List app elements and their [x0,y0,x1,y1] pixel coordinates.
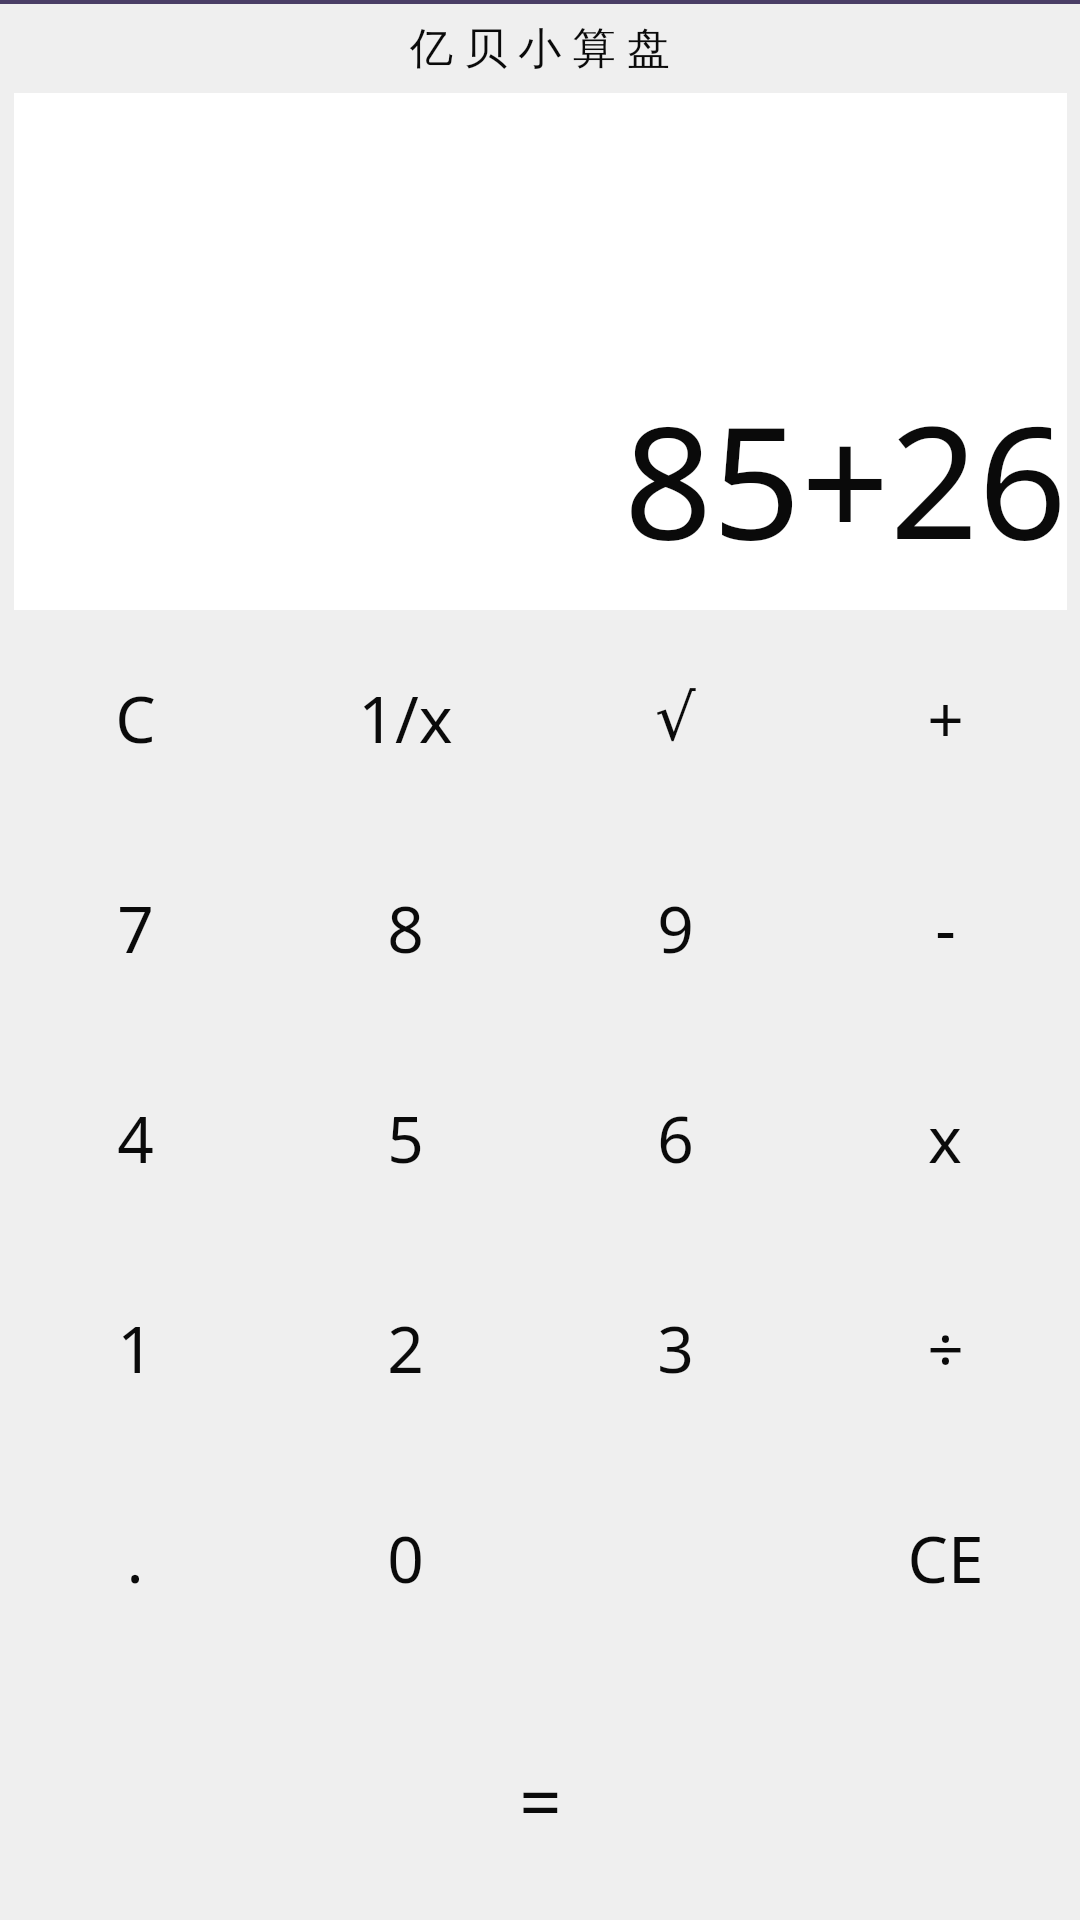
staticText: 0 [387,1515,424,1602]
staticText: 亿 贝 小 算 盘 [410,17,670,76]
staticText: C [115,675,156,762]
staticText: 85+26 [623,373,1067,584]
button[interactable]: 9 [540,823,810,1033]
staticText: x [928,1095,962,1182]
staticText: ÷ [927,1305,964,1392]
button[interactable]: CE [810,1453,1080,1663]
button[interactable]: 7 [0,823,270,1033]
staticText: . [126,1515,144,1602]
button[interactable]: 1 [0,1243,270,1453]
staticText: - [935,885,956,972]
button[interactable]: x [810,1033,1080,1243]
button[interactable]: 8 [270,823,540,1033]
staticText: 1 [117,1305,154,1392]
button[interactable]: 6 [540,1033,810,1243]
staticText: 7 [117,885,154,972]
staticText: CE [907,1515,984,1602]
button[interactable]: 5 [270,1033,540,1243]
staticText: √ [655,681,696,756]
button[interactable]: 0 [270,1453,540,1663]
button[interactable]: C [0,613,270,823]
button[interactable]: 3 [540,1243,810,1453]
staticText: = [519,1750,562,1851]
staticText: 5 [387,1095,424,1182]
staticText: 6 [657,1095,694,1182]
staticText: 4 [117,1095,154,1182]
button[interactable]: - [810,823,1080,1033]
button[interactable]: √ [540,613,810,823]
button[interactable]: ÷ [810,1243,1080,1453]
staticText: 2 [387,1305,424,1392]
button[interactable]: 4 [0,1033,270,1243]
button[interactable]: 2 [270,1243,540,1453]
staticText: 8 [387,885,424,972]
button[interactable]: . [0,1453,270,1663]
staticText: 9 [657,885,694,972]
button[interactable]: 1/x [270,613,540,823]
staticText: + [927,675,964,762]
staticText: 3 [657,1305,694,1392]
button[interactable]: + [810,613,1080,823]
button[interactable]: Equals [440,1720,640,1880]
staticText: 1/x [358,675,453,762]
